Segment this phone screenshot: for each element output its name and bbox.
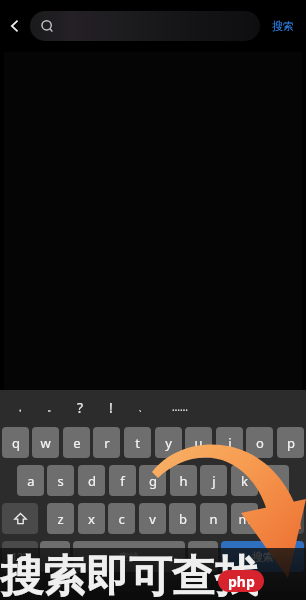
button[interactable]: d bbox=[78, 465, 105, 496]
staticText: p bbox=[287, 434, 295, 452]
button[interactable]: ! bbox=[99, 396, 123, 418]
staticText: h bbox=[179, 472, 188, 490]
button[interactable]: z bbox=[47, 503, 74, 534]
button[interactable]: 搜索 bbox=[221, 541, 304, 572]
staticText: w bbox=[40, 434, 51, 452]
button[interactable]: n bbox=[200, 503, 227, 534]
button[interactable]: m bbox=[231, 503, 258, 534]
button[interactable]: e bbox=[63, 427, 90, 458]
staticText: y bbox=[165, 434, 172, 452]
button[interactable]: ， bbox=[40, 541, 70, 572]
staticText: …… bbox=[172, 400, 188, 414]
staticText: t bbox=[135, 434, 140, 452]
staticText: q bbox=[12, 434, 20, 452]
staticText: 。 bbox=[47, 401, 57, 414]
staticText: x bbox=[88, 510, 95, 528]
staticText: r bbox=[104, 434, 110, 452]
button[interactable]: 。 bbox=[40, 396, 64, 418]
button[interactable]: j bbox=[200, 465, 227, 496]
staticText: l bbox=[274, 472, 278, 490]
button[interactable]: ? bbox=[68, 396, 92, 418]
staticText: n bbox=[209, 510, 218, 528]
button[interactable]: c bbox=[108, 503, 135, 534]
button[interactable]: Shift bbox=[2, 503, 38, 534]
button[interactable]: x bbox=[78, 503, 105, 534]
button[interactable]: b bbox=[169, 503, 196, 534]
staticText: 空格 bbox=[119, 550, 139, 563]
staticText: php bbox=[228, 572, 255, 591]
staticText: g bbox=[149, 472, 157, 490]
button[interactable]: Back bbox=[0, 0, 30, 52]
staticText: 搜索 bbox=[272, 19, 294, 33]
button[interactable]: 搜索 bbox=[260, 0, 306, 52]
staticText: ， bbox=[15, 401, 25, 414]
button[interactable]: Backspace bbox=[268, 503, 304, 534]
button[interactable]: ， bbox=[8, 396, 32, 418]
staticText: j bbox=[212, 472, 216, 490]
button[interactable] bbox=[30, 11, 260, 41]
staticText: k bbox=[241, 472, 248, 490]
button[interactable]: o bbox=[246, 427, 273, 458]
staticText: m bbox=[238, 510, 251, 528]
staticText: 、 bbox=[138, 401, 148, 414]
button[interactable]: f bbox=[109, 465, 136, 496]
staticText: 。 bbox=[198, 550, 208, 563]
button[interactable]: y bbox=[155, 427, 182, 458]
button[interactable]: w bbox=[32, 427, 59, 458]
staticText: ， bbox=[50, 550, 60, 563]
staticText: v bbox=[149, 510, 156, 528]
button[interactable]: l bbox=[262, 465, 289, 496]
button[interactable]: t bbox=[124, 427, 151, 458]
staticText: d bbox=[88, 472, 96, 490]
button[interactable]: i bbox=[216, 427, 243, 458]
staticText: c bbox=[118, 510, 125, 528]
staticText: ? bbox=[77, 398, 84, 417]
staticText: ! bbox=[109, 398, 113, 417]
button[interactable]: …… bbox=[168, 396, 192, 418]
staticText: 搜索 bbox=[252, 550, 274, 564]
button[interactable]: a bbox=[17, 465, 44, 496]
button[interactable]: 123 bbox=[2, 541, 38, 572]
button[interactable]: 、 bbox=[131, 396, 155, 418]
staticText: f bbox=[120, 472, 125, 490]
button[interactable]: q bbox=[2, 427, 29, 458]
staticText: u bbox=[194, 434, 203, 452]
button[interactable]: h bbox=[170, 465, 197, 496]
staticText: b bbox=[179, 510, 187, 528]
staticText: z bbox=[57, 510, 64, 528]
staticText: e bbox=[73, 434, 81, 452]
staticText: 123 bbox=[11, 550, 29, 564]
staticText: o bbox=[256, 434, 264, 452]
button[interactable]: p bbox=[277, 427, 304, 458]
button[interactable]: s bbox=[47, 465, 74, 496]
staticText: s bbox=[57, 472, 64, 490]
button[interactable]: g bbox=[139, 465, 166, 496]
button[interactable]: u bbox=[185, 427, 212, 458]
staticText: a bbox=[27, 472, 35, 490]
button[interactable]: v bbox=[139, 503, 166, 534]
button[interactable]: 空格 bbox=[73, 541, 185, 572]
button[interactable]: r bbox=[93, 427, 120, 458]
button[interactable]: k bbox=[231, 465, 258, 496]
button[interactable]: 。 bbox=[188, 541, 218, 572]
staticText: i bbox=[228, 434, 232, 452]
staticText: 搜索即可查找 bbox=[0, 550, 258, 600]
